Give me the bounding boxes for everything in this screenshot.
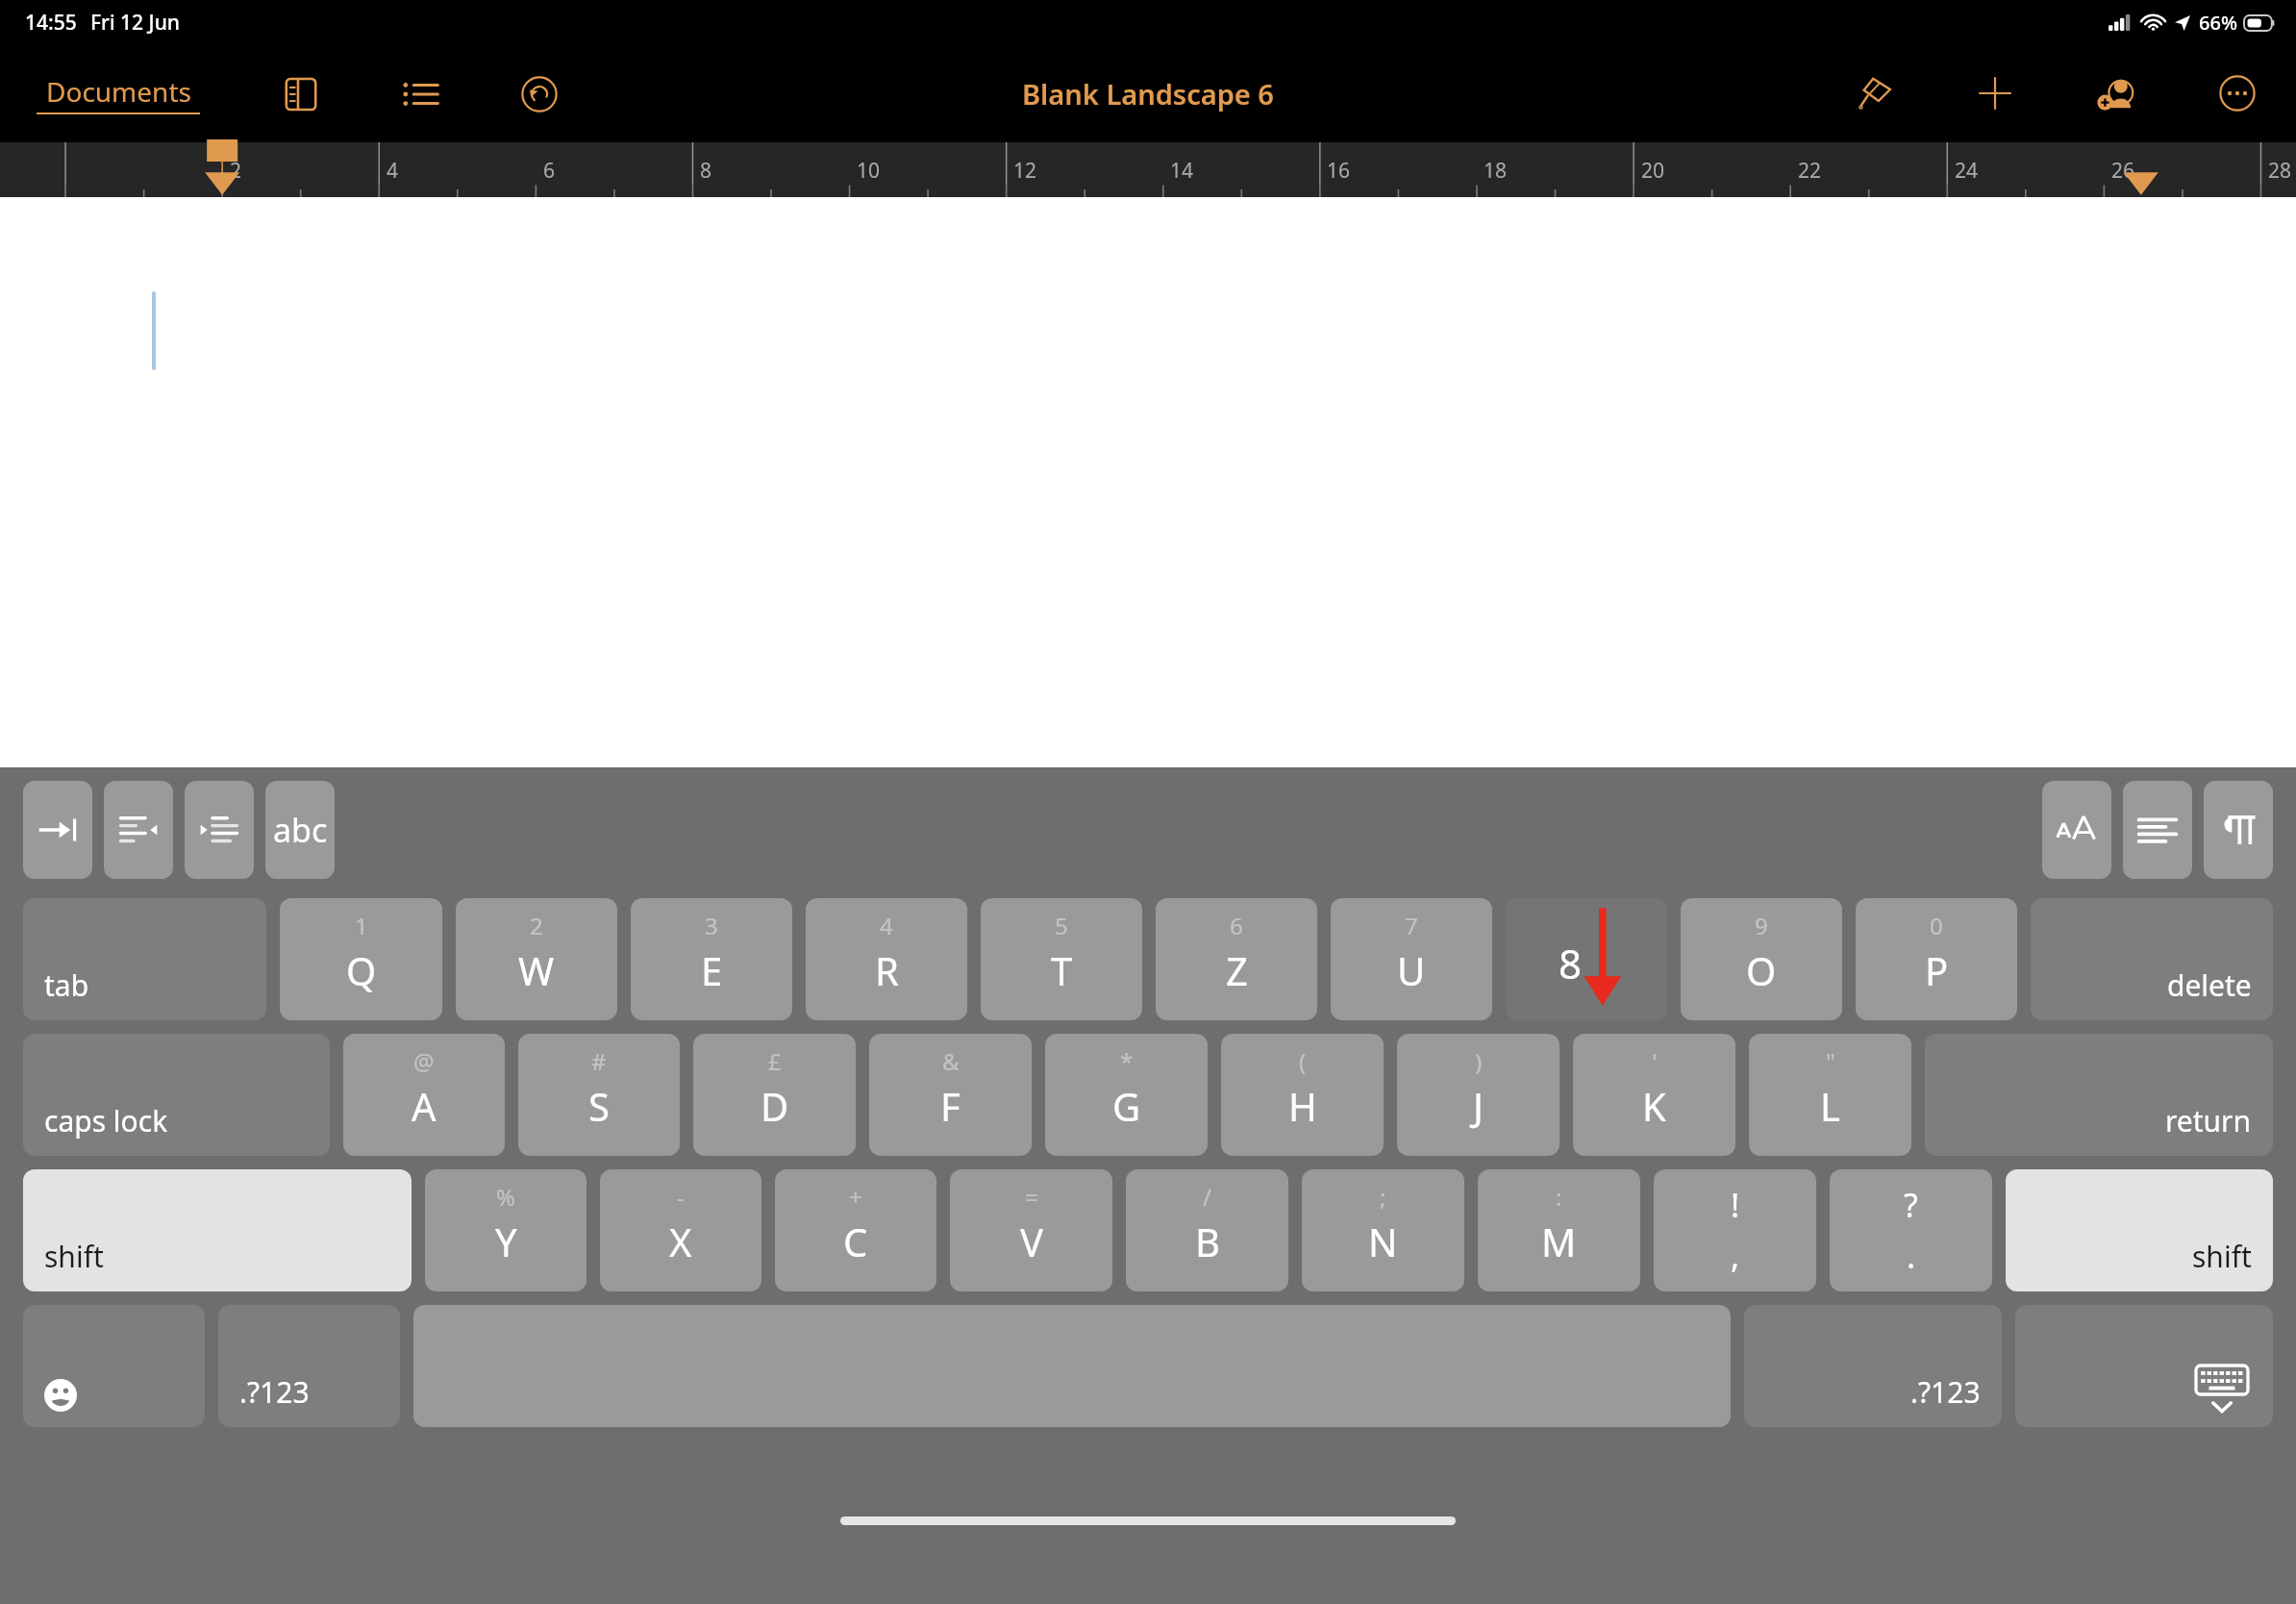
staticText: = xyxy=(1025,1181,1038,1213)
staticText: W xyxy=(518,944,555,996)
staticText: 8 xyxy=(1559,936,1583,990)
button[interactable]: @ xyxy=(343,1034,505,1156)
button[interactable]: shift xyxy=(2006,1169,2273,1291)
button[interactable]: " xyxy=(1749,1034,1911,1156)
staticText: P xyxy=(1925,944,1949,996)
staticText: 12 xyxy=(1013,157,1037,185)
button[interactable]: ! xyxy=(1654,1169,1816,1291)
staticText: Fri 12 Jun xyxy=(90,9,181,37)
button[interactable]: ; xyxy=(1302,1169,1464,1291)
staticText: 9 xyxy=(1755,910,1768,941)
staticText: 66% xyxy=(2199,10,2237,36)
button[interactable]: 3 xyxy=(631,898,792,1020)
button[interactable]: Undo xyxy=(513,68,565,120)
button[interactable]: Tab xyxy=(23,781,92,879)
button[interactable]: shift xyxy=(23,1169,412,1291)
button[interactable]: & xyxy=(869,1034,1032,1156)
button[interactable]: ( xyxy=(1221,1034,1384,1156)
button[interactable]: Paragraph marks xyxy=(2204,781,2273,879)
staticText: A xyxy=(412,1080,437,1132)
button[interactable]: Increase indent xyxy=(185,781,254,879)
staticText: 14 xyxy=(1170,157,1194,185)
button[interactable]: tab xyxy=(23,898,266,1020)
button[interactable] xyxy=(23,1305,205,1427)
button[interactable]: ) xyxy=(1397,1034,1560,1156)
staticText: ? xyxy=(1904,1183,1918,1227)
button[interactable]: : xyxy=(1478,1169,1640,1291)
button[interactable]: .?123 xyxy=(218,1305,400,1427)
staticText: K xyxy=(1642,1080,1666,1132)
staticText: # xyxy=(591,1045,607,1077)
button[interactable]: £ xyxy=(693,1034,856,1156)
staticText: J xyxy=(1473,1080,1484,1132)
staticText: £ xyxy=(768,1045,782,1077)
staticText: 7 xyxy=(1405,910,1418,941)
staticText: Documents xyxy=(46,73,191,110)
button[interactable]: return xyxy=(1925,1034,2273,1156)
button[interactable]: 2 xyxy=(456,898,617,1020)
staticText: shift xyxy=(2192,1237,2252,1276)
button[interactable]: 0 xyxy=(1856,898,2017,1020)
staticText: 6 xyxy=(1230,910,1243,941)
staticText: @ xyxy=(413,1045,435,1077)
staticText: F xyxy=(940,1080,961,1132)
button[interactable]: abc xyxy=(265,781,335,879)
button[interactable]: 8 xyxy=(1506,898,1667,1020)
staticText: 1 xyxy=(355,910,368,941)
staticText: T xyxy=(1051,944,1073,996)
staticText: + xyxy=(849,1181,862,1213)
staticText: 24 xyxy=(1955,157,1979,185)
staticText: . xyxy=(1907,1234,1916,1278)
button[interactable]: 1 xyxy=(280,898,442,1020)
button[interactable]: - xyxy=(600,1169,761,1291)
button[interactable]: + xyxy=(775,1169,936,1291)
button[interactable]: Insert xyxy=(1969,67,2021,119)
button[interactable]: More options xyxy=(2211,67,2263,119)
staticText: N xyxy=(1368,1216,1398,1267)
staticText: % xyxy=(496,1181,515,1213)
button[interactable]: % xyxy=(425,1169,586,1291)
staticText: 4 xyxy=(387,157,399,185)
staticText: ( xyxy=(1299,1045,1307,1077)
button[interactable]: 7 xyxy=(1331,898,1492,1020)
button[interactable]: 9 xyxy=(1681,898,1842,1020)
staticText: M xyxy=(1541,1216,1577,1267)
staticText: .?123 xyxy=(239,1372,310,1412)
staticText: 8 xyxy=(700,157,712,185)
button[interactable]: Alignment xyxy=(2123,781,2192,879)
button[interactable]: Collaborate xyxy=(2090,67,2142,119)
button[interactable] xyxy=(2015,1305,2273,1427)
staticText: X xyxy=(669,1216,692,1267)
button[interactable]: ' xyxy=(1573,1034,1735,1156)
staticText: S xyxy=(588,1080,610,1132)
button[interactable]: List view xyxy=(394,68,446,120)
staticText: / xyxy=(1203,1181,1211,1213)
button[interactable]: / xyxy=(1126,1169,1288,1291)
button[interactable]: caps lock xyxy=(23,1034,330,1156)
staticText: B xyxy=(1195,1216,1220,1267)
button[interactable]: Text size xyxy=(2042,781,2111,879)
button[interactable]: delete xyxy=(2031,898,2273,1020)
button[interactable]: # xyxy=(518,1034,680,1156)
button[interactable]: Decrease indent xyxy=(104,781,173,879)
button[interactable]: * xyxy=(1045,1034,1208,1156)
staticText: V xyxy=(1020,1216,1043,1267)
button[interactable]: = xyxy=(950,1169,1112,1291)
button[interactable]: Documents xyxy=(33,63,204,124)
button[interactable]: ? xyxy=(1830,1169,1992,1291)
button[interactable]: 6 xyxy=(1156,898,1317,1020)
staticText: & xyxy=(942,1045,960,1077)
button[interactable]: 4 xyxy=(806,898,967,1020)
staticText: return xyxy=(2165,1101,2252,1140)
staticText: 6 xyxy=(543,157,556,185)
staticText: 28 xyxy=(2268,157,2292,185)
staticText: O xyxy=(1746,944,1777,996)
button[interactable]: Format xyxy=(1848,67,1900,119)
button[interactable]: Sidebar xyxy=(275,68,327,120)
staticText: Blank Landscape 6 xyxy=(1022,75,1274,113)
button[interactable]: 5 xyxy=(981,898,1142,1020)
staticText: ; xyxy=(1380,1181,1386,1213)
staticText: Q xyxy=(346,944,377,996)
button[interactable]: .?123 xyxy=(1744,1305,2002,1427)
